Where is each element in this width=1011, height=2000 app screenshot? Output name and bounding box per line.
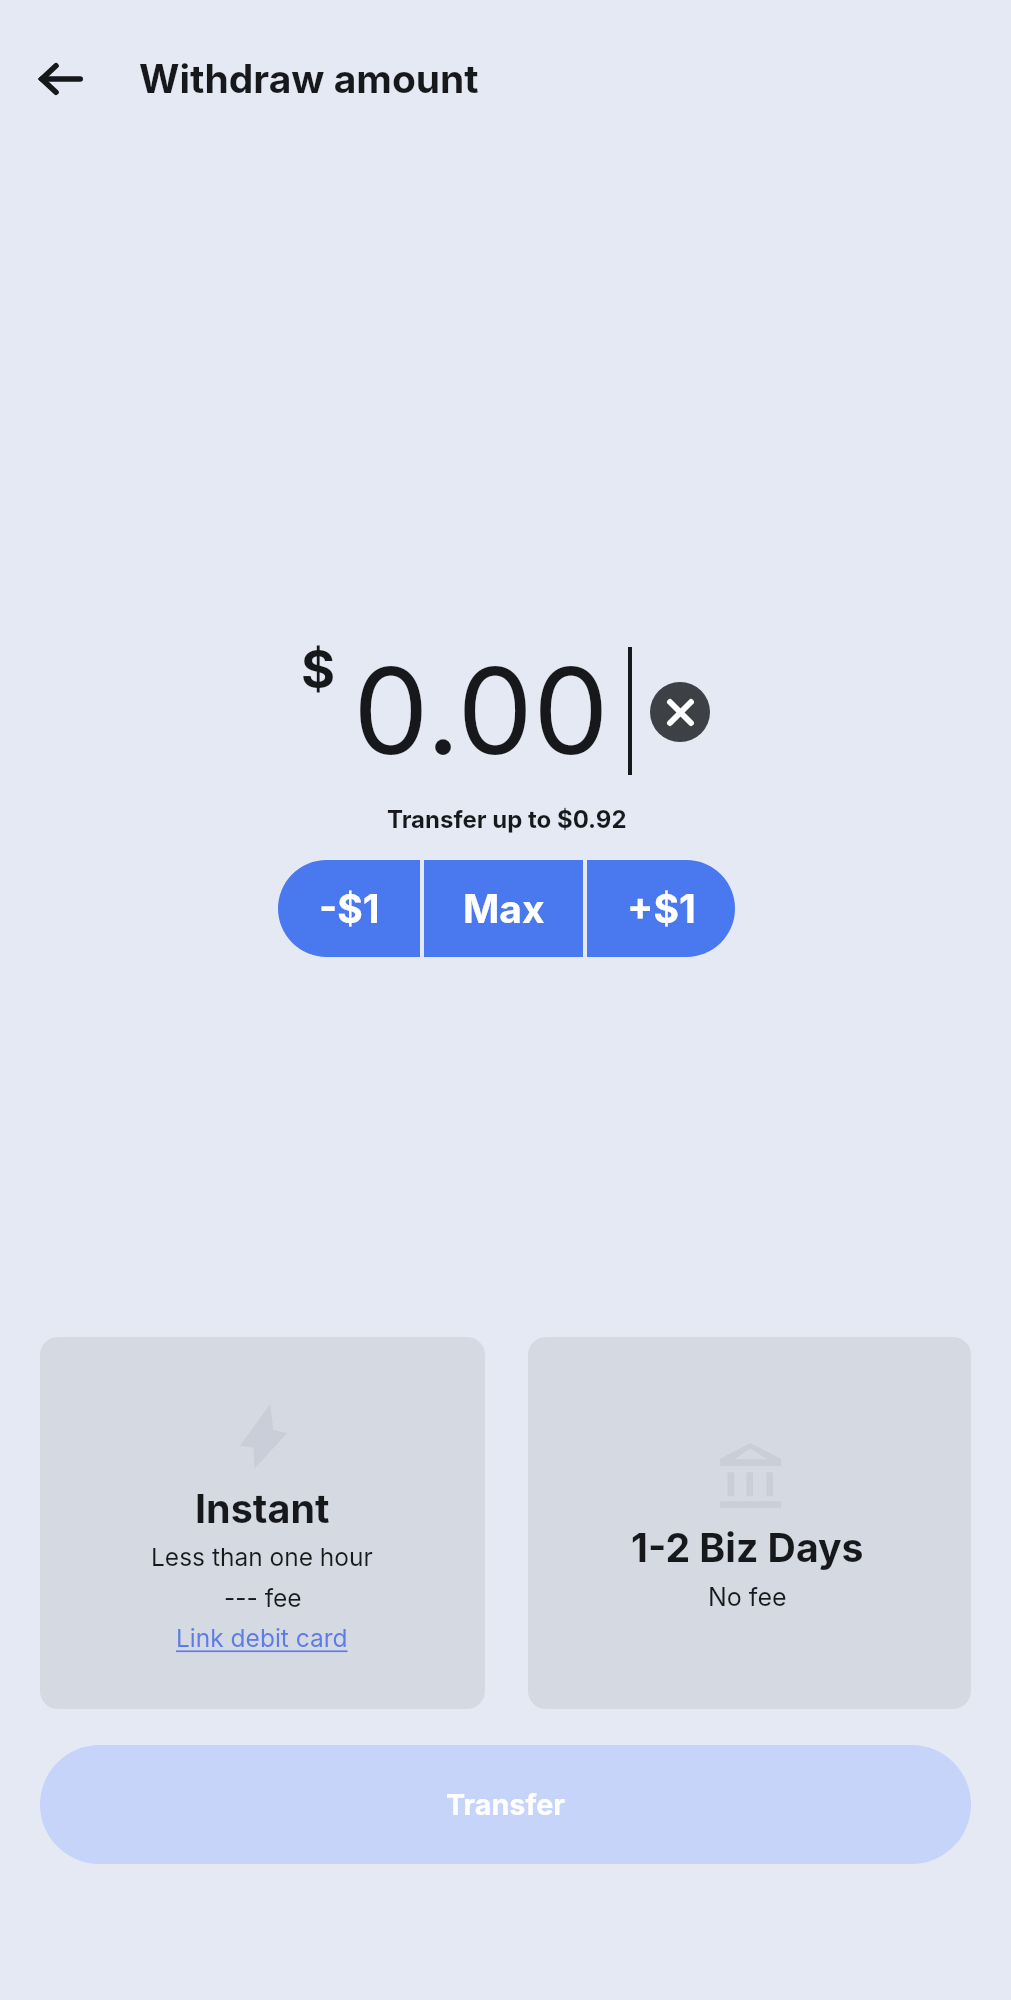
staticText: Transfer up to $0.92: [387, 805, 627, 834]
button[interactable]: Transfer: [40, 1745, 971, 1864]
staticText: $: [301, 638, 336, 701]
staticText: -$1: [319, 885, 380, 932]
button[interactable]: Clear amount: [650, 682, 710, 742]
staticText: Max: [463, 885, 545, 932]
staticText: --- fee: [224, 1583, 302, 1613]
button[interactable]: Max: [424, 860, 583, 957]
button[interactable]: Instant: [40, 1337, 485, 1709]
staticText: 1-2 Biz Days: [631, 1524, 864, 1571]
button[interactable]: Back: [25, 43, 97, 115]
staticText: Transfer: [446, 1787, 565, 1822]
staticText: Instant: [195, 1485, 330, 1533]
staticText: 0.00: [353, 638, 609, 783]
button[interactable]: 1-2 Biz Days: [528, 1337, 971, 1709]
staticText: No fee: [708, 1582, 787, 1612]
staticText: Less than one hour: [151, 1542, 373, 1572]
staticText: Withdraw amount: [139, 55, 479, 102]
button[interactable]: +$1: [587, 860, 735, 957]
staticText: +$1: [627, 885, 696, 932]
button[interactable]: -$1: [278, 860, 420, 957]
